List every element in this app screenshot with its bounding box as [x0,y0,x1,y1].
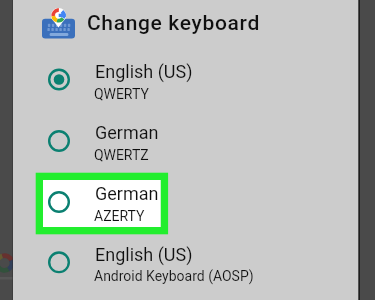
staticText: AZERTY [94,208,145,224]
button[interactable]: English (US) [13,232,359,293]
staticText: Android Keyboard (AOSP) [94,268,254,284]
button[interactable]: English (US) [13,49,359,110]
staticText: QWERTZ [94,147,149,163]
staticText: QWERTY [94,86,149,102]
staticText: German [95,183,159,204]
staticText: English (US) [95,244,193,265]
button[interactable]: German [13,171,359,232]
other: Gboard [42,7,75,39]
staticText: German [95,122,159,143]
staticText: English (US) [95,61,193,82]
button[interactable]: German [13,110,359,171]
staticText: Change keyboard [87,11,260,36]
